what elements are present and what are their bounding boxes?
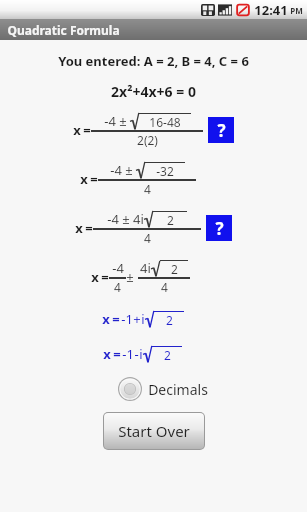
staticText: -32 <box>156 163 174 179</box>
staticText: x <box>73 121 81 139</box>
staticText: -4 <box>112 259 124 277</box>
staticText: -4 ± 4i <box>107 210 144 228</box>
staticText: 4 <box>114 279 121 295</box>
staticText: = <box>101 268 109 286</box>
staticText: ? <box>217 119 226 142</box>
staticText: Start Over <box>118 421 190 441</box>
staticText: -1 <box>122 345 134 363</box>
staticText: 12:41 <box>254 1 288 19</box>
staticText: 2(2) <box>137 132 158 148</box>
staticText: x <box>75 219 83 237</box>
staticText: = <box>90 170 98 188</box>
staticText: i <box>141 310 145 328</box>
staticText: -4 ± <box>104 112 127 130</box>
staticText: = <box>112 310 120 328</box>
staticText: 2 <box>164 347 171 363</box>
button[interactable]: Start Over <box>104 413 204 449</box>
staticText: 2 <box>166 312 173 328</box>
staticText: 4 <box>144 230 151 246</box>
staticText: You entered: A = 2, B = 4, C = 6 <box>58 52 249 70</box>
staticText: = <box>85 219 93 237</box>
staticText: i <box>139 345 143 363</box>
staticText: Quadratic Formula <box>7 22 120 38</box>
staticText: = <box>83 121 91 139</box>
staticText: x <box>80 170 88 188</box>
staticText: - <box>134 345 139 363</box>
staticText: + <box>133 310 141 328</box>
staticText: PM <box>290 5 303 16</box>
staticText: Decimals <box>148 380 208 399</box>
staticText: ? <box>215 217 224 240</box>
staticText: x <box>102 310 110 328</box>
staticText: x <box>91 268 99 286</box>
staticText: x <box>103 345 111 363</box>
staticText: ± <box>126 268 134 286</box>
staticText: = <box>113 345 121 363</box>
staticText: 2x²+4x+6 = 0 <box>111 82 196 101</box>
button[interactable]: Decimals <box>0 376 307 402</box>
staticText: 4i <box>140 259 151 277</box>
staticText: 4 <box>161 279 168 295</box>
staticText: 4 <box>144 181 151 197</box>
button[interactable]: Help <box>206 215 232 241</box>
staticText: 16-48 <box>149 114 181 130</box>
staticText: -1 <box>121 310 133 328</box>
staticText: 2 <box>171 261 178 277</box>
button[interactable]: Help <box>208 117 234 143</box>
staticText: 2 <box>167 212 174 228</box>
staticText: -4 ± <box>110 161 133 179</box>
